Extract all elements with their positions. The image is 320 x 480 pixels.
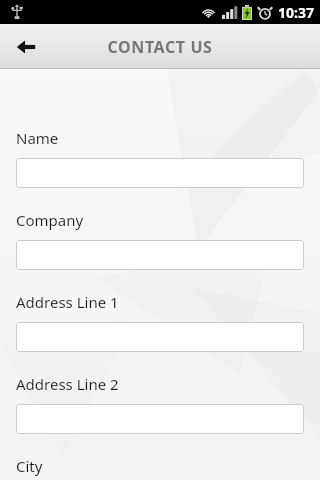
staticText: Company [16,210,84,230]
button[interactable]: Company [16,240,304,270]
button[interactable]: Back [0,24,52,69]
staticText: 10:37 [278,3,314,22]
staticText: City [16,456,43,476]
button[interactable]: Address Line 2 [16,404,304,434]
staticText: Name [16,128,59,148]
staticText: Address Line 1 [16,292,119,312]
button[interactable]: Address Line 1 [16,322,304,352]
staticText: CONTACT US [107,36,213,58]
button[interactable]: Name [16,158,304,188]
staticText: Address Line 2 [16,374,119,394]
